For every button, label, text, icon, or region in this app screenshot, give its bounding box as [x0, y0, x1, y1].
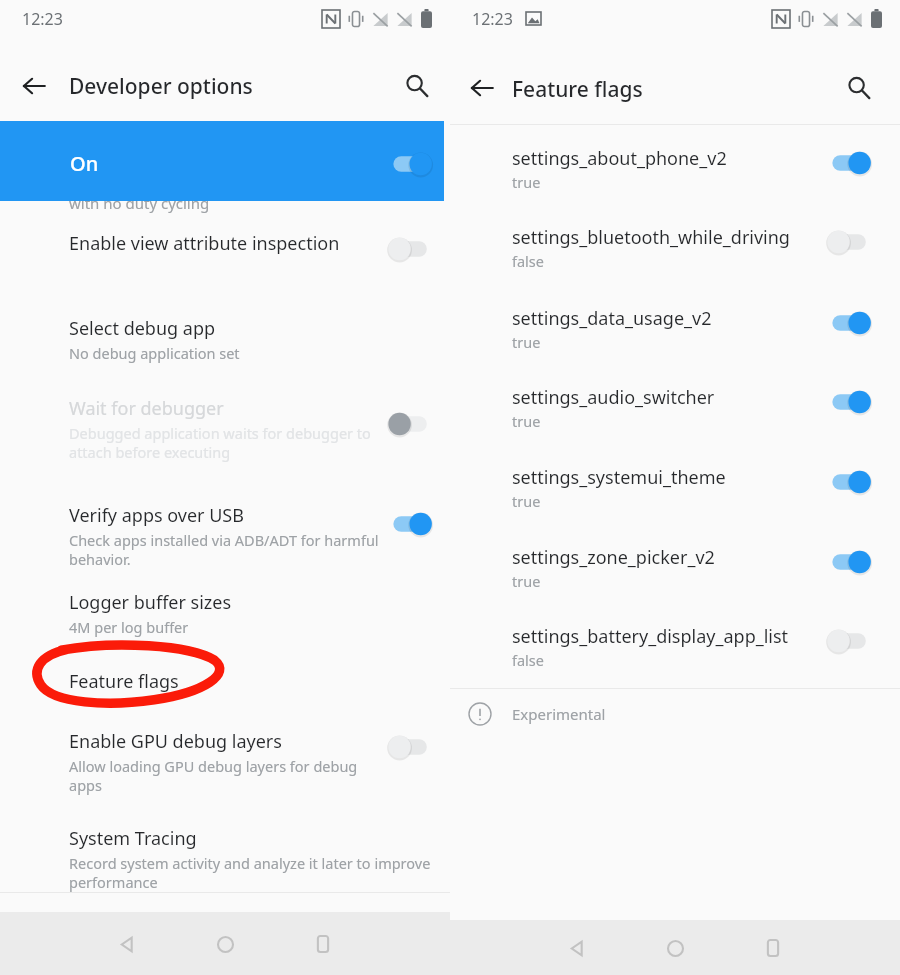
staticText: 12:23 — [22, 8, 63, 30]
staticText: settings_systemui_theme — [512, 465, 726, 490]
button[interactable]: settings_data_usage_v2 — [450, 303, 900, 371]
button[interactable]: Back — [100, 917, 154, 971]
button[interactable]: Navigate up — [14, 66, 54, 106]
button[interactable]: Experimental — [450, 689, 900, 744]
staticText: settings_zone_picker_v2 — [512, 545, 715, 570]
staticText: 4M per log buffer — [69, 617, 189, 637]
staticText: Select debug app — [69, 316, 216, 341]
staticText: No debug application set — [69, 343, 240, 363]
staticText: true — [512, 491, 541, 511]
button[interactable]: Recents — [296, 917, 350, 971]
button[interactable]: Navigate up — [462, 68, 502, 108]
button[interactable]: Enable view attribute inspection — [0, 223, 450, 281]
staticText: true — [512, 332, 541, 352]
staticText: Allow loading GPU debug layers for debug… — [69, 756, 358, 795]
staticText: System Tracing — [69, 826, 197, 851]
button[interactable]: settings_systemui_theme — [450, 462, 900, 530]
staticText: settings_audio_switcher — [512, 385, 715, 410]
button[interactable]: Search — [838, 67, 880, 109]
staticText: On — [70, 150, 99, 177]
staticText: Developer options — [69, 72, 253, 101]
staticText: true — [512, 411, 541, 431]
button[interactable]: Recents — [746, 921, 800, 975]
button[interactable]: settings_about_phone_v2 — [450, 143, 900, 211]
button[interactable]: Logger buffer sizes — [0, 582, 450, 656]
staticText: Experimental — [512, 704, 606, 724]
staticText: Enable view attribute inspection — [69, 231, 340, 256]
staticText: false — [512, 251, 544, 271]
staticText: settings_battery_display_app_list — [512, 624, 789, 649]
button[interactable]: Home — [648, 921, 702, 975]
staticText: true — [512, 571, 541, 591]
staticText: Record system activity and analyze it la… — [69, 853, 431, 892]
staticText: settings_data_usage_v2 — [512, 306, 712, 331]
button[interactable]: Wait for debugger — [0, 388, 450, 480]
staticText: settings_bluetooth_while_driving — [512, 225, 790, 250]
button[interactable]: Verify apps over USB — [0, 495, 450, 587]
button[interactable]: System Tracing — [0, 818, 450, 910]
staticText: Wait for debugger — [69, 396, 224, 421]
staticText: 12:23 — [472, 8, 513, 30]
staticText: Enable GPU debug layers — [69, 729, 282, 754]
staticText: Logger buffer sizes — [69, 590, 232, 615]
staticText: Verify apps over USB — [69, 503, 244, 528]
button[interactable]: settings_bluetooth_while_driving — [450, 222, 900, 290]
button[interactable]: On — [0, 121, 444, 201]
button[interactable]: Home — [198, 917, 252, 971]
button[interactable]: Search — [396, 65, 438, 107]
staticText: settings_about_phone_v2 — [512, 146, 727, 171]
button[interactable]: settings_battery_display_app_list — [450, 621, 900, 689]
staticText: Feature flags — [69, 669, 179, 694]
staticText: Feature flags — [512, 75, 643, 104]
button[interactable]: Enable GPU debug layers — [0, 721, 450, 813]
staticText: Check apps installed via ADB/ADT for har… — [69, 530, 379, 569]
button[interactable]: settings_zone_picker_v2 — [450, 542, 900, 610]
staticText: false — [512, 650, 544, 670]
button[interactable]: settings_audio_switcher — [450, 382, 900, 450]
staticText: true — [512, 172, 541, 192]
button[interactable]: Back — [550, 921, 604, 975]
button[interactable]: Feature flags — [0, 661, 450, 719]
button[interactable]: Select debug app — [0, 308, 450, 382]
staticText: with no duty cycling — [69, 193, 210, 213]
staticText: Debugged application waits for debugger … — [69, 423, 371, 462]
